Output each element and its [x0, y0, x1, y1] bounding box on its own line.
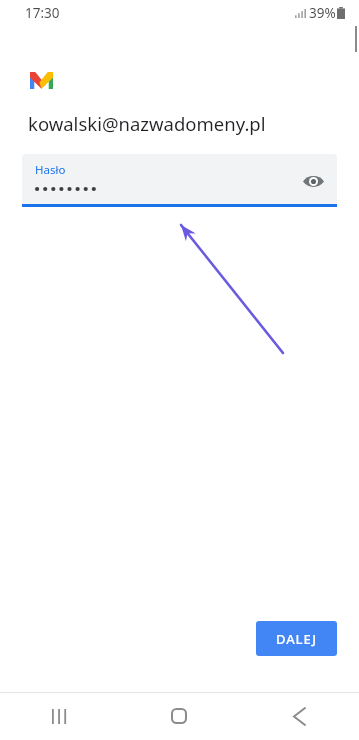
staticText: DALEJ	[276, 630, 317, 648]
button[interactable]: Recent apps	[0, 692, 119, 740]
staticText: Hasło	[35, 162, 66, 178]
button[interactable]: DALEJ	[256, 621, 337, 656]
staticText: 17:30	[25, 4, 60, 22]
button[interactable]: Home	[119, 692, 239, 740]
button[interactable]: Back	[239, 692, 359, 740]
button[interactable]: Hasło	[22, 154, 337, 207]
staticText: 39%	[309, 4, 336, 22]
button[interactable]: Pokaż hasło	[296, 164, 330, 198]
staticText: kowalski@nazwadomeny.pl	[28, 111, 266, 136]
